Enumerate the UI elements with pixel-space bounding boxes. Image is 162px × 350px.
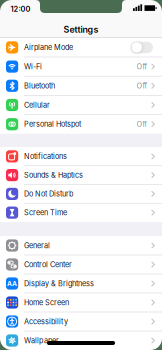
button[interactable]: Notifications bbox=[0, 147, 162, 166]
staticText: General bbox=[24, 241, 50, 250]
button[interactable]: Airplane Mode bbox=[131, 42, 153, 53]
staticText: Home Screen bbox=[24, 298, 69, 307]
staticText: Off bbox=[137, 81, 148, 90]
button[interactable]: Cellular bbox=[0, 95, 162, 115]
staticText: Control Center bbox=[24, 260, 72, 269]
staticText: AA bbox=[7, 279, 17, 288]
staticText: 12:00 bbox=[10, 4, 30, 13]
staticText: Accessibility bbox=[24, 317, 68, 326]
staticText: Sounds & Haptics bbox=[24, 171, 83, 180]
staticText: Notifications bbox=[24, 152, 67, 161]
button[interactable]: General bbox=[0, 236, 162, 255]
button[interactable]: Wi-Fi bbox=[0, 57, 162, 76]
button[interactable]: Screen Time bbox=[0, 203, 162, 222]
staticText: Personal Hotspot bbox=[24, 120, 81, 129]
staticText: Airplane Mode bbox=[24, 43, 73, 52]
button[interactable]: Do Not Disturb bbox=[0, 184, 162, 203]
staticText: Wallpaper bbox=[24, 336, 59, 345]
staticText: Off bbox=[137, 62, 148, 71]
button[interactable]: Bluetooth bbox=[0, 76, 162, 95]
staticText: Wi-Fi bbox=[24, 62, 42, 71]
staticText: Bluetooth bbox=[24, 81, 55, 90]
button[interactable]: AA bbox=[0, 274, 162, 293]
staticText: Screen Time bbox=[24, 208, 67, 217]
button[interactable]: Home Screen bbox=[0, 293, 162, 312]
staticText: Do Not Disturb bbox=[24, 189, 73, 198]
staticText: Display & Brightness bbox=[24, 279, 94, 288]
staticText: Off bbox=[137, 120, 148, 129]
button[interactable]: Accessibility bbox=[0, 312, 162, 331]
staticText: Cellular bbox=[24, 101, 50, 109]
staticText: Settings bbox=[63, 24, 98, 35]
button[interactable]: Personal Hotspot bbox=[0, 115, 162, 134]
button[interactable]: Control Center bbox=[0, 255, 162, 274]
button[interactable]: Sounds & Haptics bbox=[0, 166, 162, 185]
button[interactable]: Wallpaper bbox=[0, 331, 162, 350]
